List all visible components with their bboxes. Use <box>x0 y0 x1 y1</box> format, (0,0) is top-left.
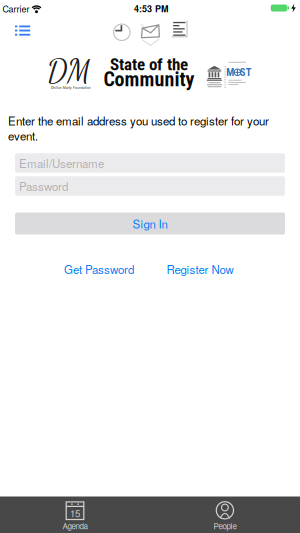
staticText: Dhillon Marty Foundation <box>51 85 91 90</box>
staticText: 4:53 PM <box>134 2 168 15</box>
staticText: M <box>226 66 234 78</box>
staticText: Enter the email address you used to regi… <box>8 112 269 129</box>
staticText: Community <box>103 68 194 91</box>
staticText: ST <box>240 66 252 78</box>
staticText: Password <box>19 178 68 194</box>
staticText: State of the <box>110 54 188 74</box>
staticText: People <box>213 520 236 532</box>
staticText: Agenda <box>62 520 87 532</box>
staticText: Sign In <box>132 215 167 232</box>
staticText: Register Now <box>166 261 233 277</box>
staticText: DM <box>47 52 91 90</box>
staticText: Email/Username <box>19 155 104 171</box>
staticText: event. <box>8 127 38 144</box>
staticText: Get Password <box>64 261 134 277</box>
staticText: Carrier <box>2 2 29 15</box>
staticText: 15 <box>70 506 80 520</box>
